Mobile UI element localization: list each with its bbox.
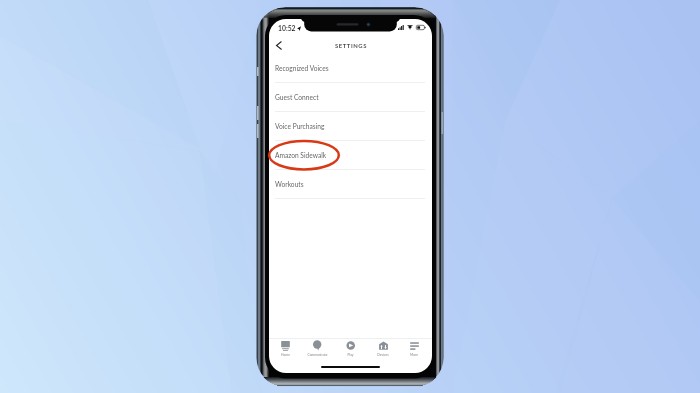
button[interactable]: Back [271,37,287,53]
staticText: Home [281,353,290,357]
button[interactable]: Home [271,341,299,357]
button[interactable]: Recognized Voices [269,54,432,83]
button[interactable]: Guest Connect [269,83,432,112]
staticText: Devices [377,353,389,357]
staticText: Voice Purchasing [275,122,325,130]
button[interactable]: Amazon Sidewalk [269,141,432,170]
staticText: Workouts [275,180,304,188]
button[interactable]: More [400,341,428,357]
staticText: Recognized Voices [275,64,329,72]
staticText: More [410,353,418,357]
staticText: Amazon Sidewalk [275,151,327,159]
button[interactable]: Workouts [269,170,432,199]
staticText: Play [347,353,354,357]
button[interactable]: Voice Purchasing [269,112,432,141]
button[interactable]: Play [336,341,364,357]
staticText: Communicate [307,353,328,357]
staticText: Guest Connect [275,93,319,101]
staticText: 10:52 [278,24,296,32]
button[interactable]: Communicate [303,341,331,357]
staticText: SETTINGS [335,42,367,49]
button[interactable]: Devices [369,341,397,357]
